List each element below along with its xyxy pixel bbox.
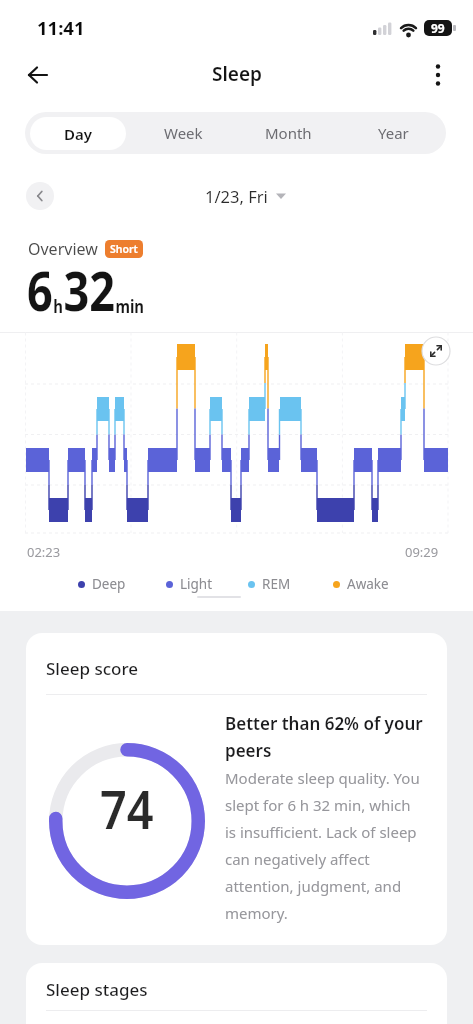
staticText: Month (265, 123, 312, 143)
button[interactable]: Month (236, 112, 341, 154)
staticText: Overview (28, 238, 98, 260)
staticText: Short (110, 242, 138, 256)
staticText: Year (378, 123, 409, 143)
staticText: 6 (27, 254, 53, 326)
staticText: Better than 62% of your peers (225, 712, 423, 762)
button[interactable]: Day (25, 112, 131, 154)
button[interactable]: 1/23, Fri (0, 185, 473, 207)
button[interactable]: Week (131, 112, 236, 154)
staticText: Sleep stages (46, 978, 148, 1001)
button[interactable] (422, 337, 450, 365)
staticText: 1/23, Fri (205, 185, 268, 207)
staticText: min (115, 294, 144, 318)
staticText: 99 (431, 20, 445, 36)
staticText: Light (180, 575, 213, 593)
staticText: 11:41 (37, 15, 85, 40)
staticText: Sleep score (46, 657, 139, 680)
staticText: 32 (63, 254, 115, 326)
staticText: REM (262, 575, 291, 593)
button[interactable] (422, 58, 454, 92)
staticText: Awake (347, 575, 389, 593)
button[interactable] (26, 182, 54, 210)
button[interactable] (20, 58, 56, 92)
staticText: Day (64, 124, 92, 144)
staticText: 02:23 (27, 543, 61, 561)
staticText: Week (164, 123, 203, 143)
staticText: Sleep (212, 61, 262, 87)
staticText: Moderate sleep quality. You slept for 6 … (225, 768, 420, 924)
staticText: Deep (92, 575, 126, 593)
staticText: 09:29 (405, 543, 439, 561)
button[interactable]: Year (341, 112, 446, 154)
staticText: 74 (100, 773, 154, 844)
button[interactable]: Short (110, 242, 138, 256)
staticText: h (53, 294, 63, 318)
